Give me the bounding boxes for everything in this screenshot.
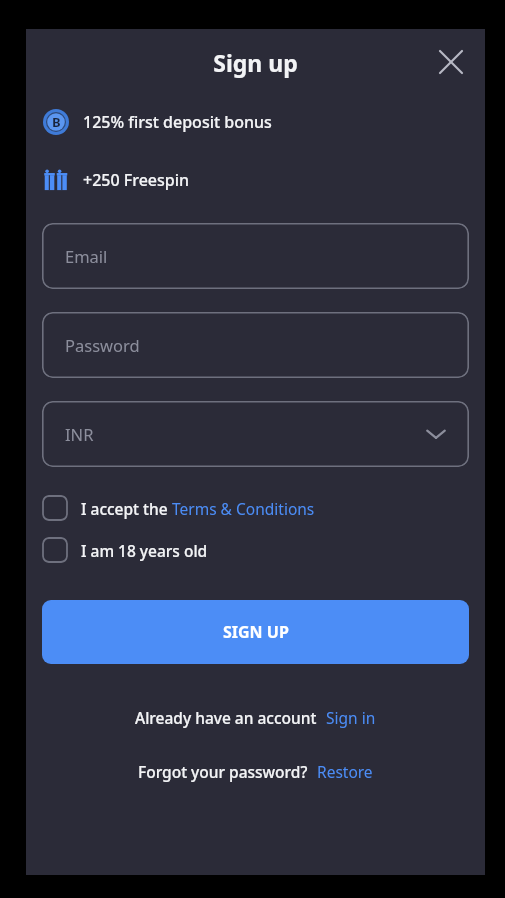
staticText: B: [52, 113, 61, 131]
button[interactable]: INR: [42, 401, 469, 467]
button[interactable]: I am 18 years old: [42, 531, 469, 569]
staticText: Email: [65, 245, 108, 267]
button[interactable]: SIGN UP: [42, 600, 469, 664]
staticText: I accept the: [81, 498, 172, 519]
staticText: Restore: [317, 761, 373, 782]
staticText: I am 18 years old: [81, 540, 208, 561]
staticText: Already have an account: [135, 707, 317, 728]
button[interactable]: Restore: [317, 761, 373, 782]
staticText: Sign in: [326, 707, 376, 728]
other: Select currency: [425, 423, 447, 445]
staticText: INR: [65, 423, 94, 445]
button[interactable]: Sign in: [326, 707, 376, 728]
staticText: SIGN UP: [223, 621, 289, 643]
staticText: Forgot your password?: [138, 761, 308, 782]
staticText: Sign up: [213, 47, 298, 78]
button[interactable]: Close: [431, 42, 471, 82]
button[interactable]: Email: [42, 223, 469, 289]
button[interactable]: I accept the: [42, 489, 469, 527]
staticText: 125% first deposit bonus: [83, 111, 272, 133]
staticText: +250 Freespin: [83, 169, 190, 191]
button[interactable]: Password: [42, 312, 469, 378]
staticText: Password: [65, 334, 140, 356]
button[interactable]: Terms & Conditions: [172, 498, 315, 519]
